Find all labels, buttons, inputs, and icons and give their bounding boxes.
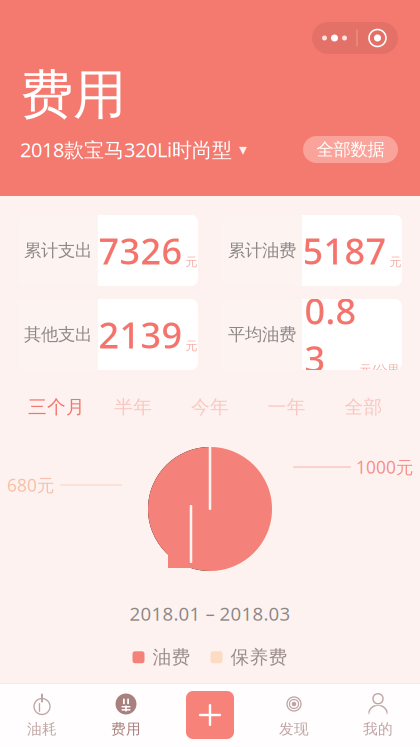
button[interactable]: 半年: [95, 394, 172, 420]
staticText: 累计支出: [24, 240, 92, 261]
staticText: 费用: [20, 62, 126, 128]
staticText: 1000元: [356, 455, 413, 478]
staticText: 三个月: [28, 395, 85, 418]
staticText: 680元: [7, 473, 54, 496]
button[interactable]: 其他支出: [18, 299, 198, 370]
button[interactable]: 全部: [325, 394, 402, 420]
button[interactable]: 累计支出: [18, 215, 198, 286]
button[interactable]: 我的: [336, 683, 420, 747]
staticText: 其他支出: [24, 324, 92, 345]
button[interactable]: 今年: [172, 394, 248, 420]
staticText: 油费: [152, 646, 190, 669]
button[interactable]: 全部数据: [303, 136, 398, 163]
staticText: 我的: [363, 720, 393, 738]
staticText: 油耗: [27, 720, 57, 738]
staticText: 一年: [268, 395, 306, 418]
staticText: 半年: [114, 395, 152, 418]
staticText: 元/公里: [359, 361, 399, 377]
staticText: 0.83: [304, 287, 356, 382]
staticText: 平均油费: [228, 324, 296, 345]
staticText: 今年: [191, 395, 229, 418]
staticText: 全部数据: [316, 139, 384, 160]
button[interactable]: 平均油费: [222, 299, 402, 370]
staticText: 发现: [279, 720, 309, 738]
staticText: 2018.01 – 2018.03: [129, 601, 290, 626]
staticText: 2018款宝马320Li时尚型: [20, 136, 232, 163]
button[interactable]: 累计油费: [222, 215, 402, 286]
button[interactable]: 一年: [248, 394, 325, 420]
staticText: ▾: [239, 140, 247, 159]
staticText: 2139: [98, 311, 182, 358]
button[interactable]: 油耗: [0, 683, 84, 747]
staticText: 元: [389, 255, 401, 269]
staticText: 费用: [111, 720, 141, 738]
staticText: 累计油费: [228, 240, 296, 261]
staticText: 元: [185, 339, 197, 353]
button[interactable]: 发现: [252, 683, 336, 747]
staticText: 5187: [302, 227, 386, 274]
staticText: 元: [185, 255, 197, 269]
button[interactable]: 三个月: [18, 394, 95, 420]
staticText: 全部: [345, 395, 383, 418]
button[interactable]: 2018款宝马320Li时尚型: [20, 136, 247, 163]
staticText: 7326: [98, 227, 182, 274]
button[interactable]: 费用: [84, 683, 168, 747]
staticText: 保养费: [230, 646, 287, 669]
button[interactable]: Add record: [168, 683, 252, 747]
